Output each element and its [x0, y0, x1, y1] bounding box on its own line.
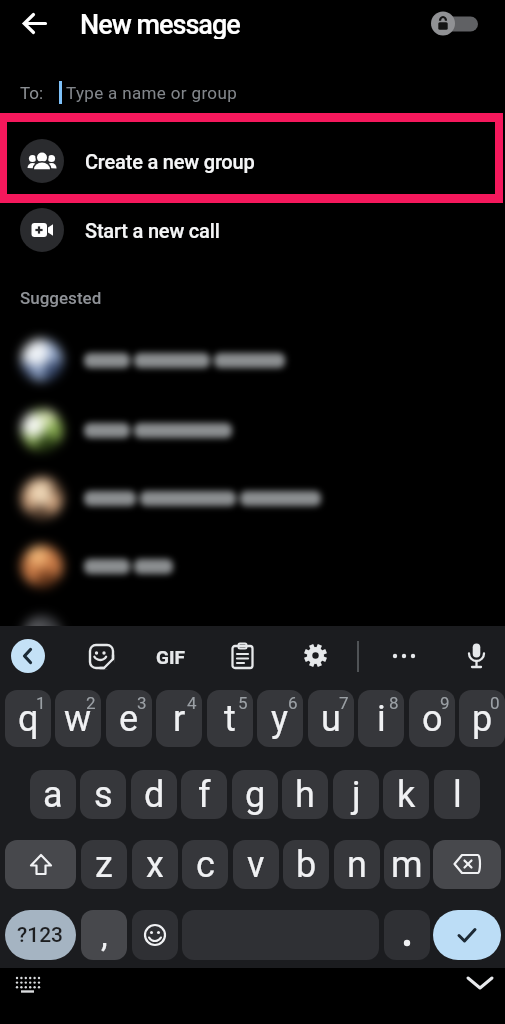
staticText: r	[173, 698, 186, 740]
staticText: To:	[20, 83, 44, 103]
staticText: 6	[288, 693, 298, 713]
staticText: x	[146, 844, 164, 886]
button[interactable]	[229, 642, 256, 669]
staticText: 1	[36, 693, 46, 713]
button[interactable]	[18, 9, 52, 39]
staticText: y	[271, 698, 289, 740]
button[interactable]: l	[434, 770, 480, 819]
button[interactable]	[433, 840, 501, 889]
button[interactable]: i	[358, 690, 404, 747]
button[interactable]: ,	[81, 910, 127, 960]
button[interactable]: q	[5, 690, 51, 747]
button[interactable]	[5, 840, 76, 889]
staticText: 9	[440, 693, 450, 713]
staticText: e	[119, 698, 139, 740]
staticText: 3	[137, 693, 147, 713]
button[interactable]: d	[131, 770, 177, 819]
button[interactable]	[0, 396, 505, 464]
button[interactable]: ?123	[5, 910, 76, 960]
staticText: k	[397, 774, 416, 816]
button[interactable]	[430, 12, 480, 36]
staticText: l	[453, 774, 462, 816]
button[interactable]: m	[384, 840, 430, 889]
button[interactable]: c	[182, 840, 228, 889]
button[interactable]: p	[459, 690, 505, 747]
staticText: 2	[86, 693, 96, 713]
button[interactable]: y	[257, 690, 303, 747]
staticText: u	[321, 698, 341, 740]
staticText: Type a name or group	[66, 83, 238, 103]
button[interactable]: b	[283, 840, 329, 889]
button[interactable]: f	[181, 770, 227, 819]
button[interactable]: w	[55, 690, 101, 747]
staticText: g	[245, 774, 266, 816]
button[interactable]	[0, 122, 505, 193]
staticText: ?123	[17, 923, 64, 948]
staticText: a	[43, 774, 63, 816]
button[interactable]	[13, 973, 43, 999]
button[interactable]: a	[30, 770, 76, 819]
button[interactable]: x	[132, 840, 178, 889]
button[interactable]: u	[308, 690, 354, 747]
staticText: t	[224, 698, 236, 740]
staticText: m	[391, 844, 423, 886]
staticText: q	[18, 698, 39, 740]
button[interactable]	[87, 642, 116, 671]
button[interactable]: n	[334, 840, 380, 889]
button[interactable]: z	[81, 840, 127, 889]
staticText: 5	[238, 693, 248, 713]
button[interactable]: o	[409, 690, 455, 747]
staticText: 8	[389, 693, 399, 713]
button[interactable]: j	[333, 770, 379, 819]
button[interactable]	[390, 642, 418, 670]
staticText: 4	[187, 693, 197, 713]
staticText: GIF	[156, 646, 185, 668]
staticText: 0	[490, 693, 500, 713]
button[interactable]	[302, 642, 329, 669]
staticText: Start a new call	[85, 219, 220, 242]
button[interactable]	[0, 205, 505, 255]
button[interactable]	[0, 326, 505, 394]
button[interactable]	[132, 910, 178, 960]
staticText: h	[295, 774, 315, 816]
staticText: s	[94, 774, 113, 816]
button[interactable]: g	[232, 770, 278, 819]
staticText: j	[352, 774, 361, 816]
staticText: Suggested	[20, 288, 102, 308]
button[interactable]	[0, 602, 505, 670]
button[interactable]	[0, 464, 505, 532]
staticText: p	[472, 698, 493, 740]
staticText: ,	[101, 915, 108, 955]
button[interactable]: t	[207, 690, 253, 747]
staticText: w	[64, 698, 92, 740]
staticText: New message	[80, 9, 240, 39]
button[interactable]: r	[156, 690, 202, 747]
staticText: v	[247, 844, 265, 886]
button[interactable]: e	[106, 690, 152, 747]
staticText: f	[198, 774, 211, 816]
button[interactable]	[11, 639, 45, 673]
staticText: c	[196, 844, 215, 886]
staticText: i	[377, 698, 386, 740]
button[interactable]: v	[233, 840, 279, 889]
staticText: 7	[339, 693, 349, 713]
button[interactable]	[0, 532, 505, 600]
button[interactable]	[433, 910, 501, 960]
button[interactable]: h	[282, 770, 328, 819]
button[interactable]	[384, 910, 430, 960]
button[interactable]	[463, 642, 490, 669]
button[interactable]: k	[383, 770, 429, 819]
staticText: Create a new group	[85, 150, 255, 173]
staticText: o	[422, 698, 443, 740]
staticText: b	[296, 844, 317, 886]
staticText: d	[144, 774, 165, 816]
button[interactable]	[464, 970, 496, 996]
staticText: z	[95, 844, 113, 886]
staticText: n	[347, 844, 367, 886]
button[interactable]: s	[80, 770, 126, 819]
